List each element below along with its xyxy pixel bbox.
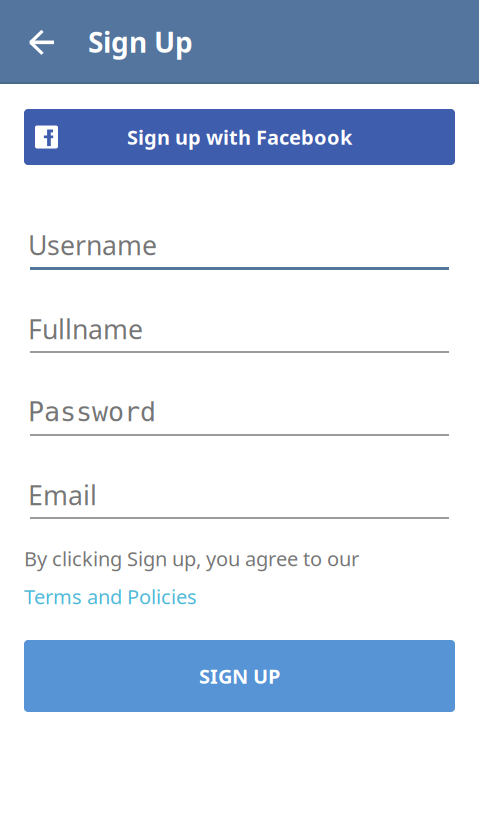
staticText: Sign up with Facebook [127, 124, 352, 150]
staticText: Password [28, 397, 156, 427]
staticText: Fullname [28, 311, 143, 347]
button[interactable]: Fullname [30, 270, 449, 353]
staticText: Email [28, 477, 97, 513]
staticText: Sign Up [88, 23, 193, 61]
button[interactable]: Back [17, 11, 65, 71]
button[interactable]: Email [30, 436, 449, 519]
button[interactable]: Terms and Policies [24, 586, 197, 607]
staticText: Terms and Policies [24, 583, 197, 610]
staticText: SIGN UP [199, 663, 280, 689]
button[interactable]: SIGN UP [24, 640, 455, 712]
button[interactable]: Sign up with Facebook [24, 109, 455, 165]
button[interactable]: Password [30, 353, 449, 436]
button[interactable]: Username [30, 187, 449, 270]
staticText: Username [28, 227, 157, 263]
staticText: By clicking Sign up, you agree to our [24, 545, 359, 572]
